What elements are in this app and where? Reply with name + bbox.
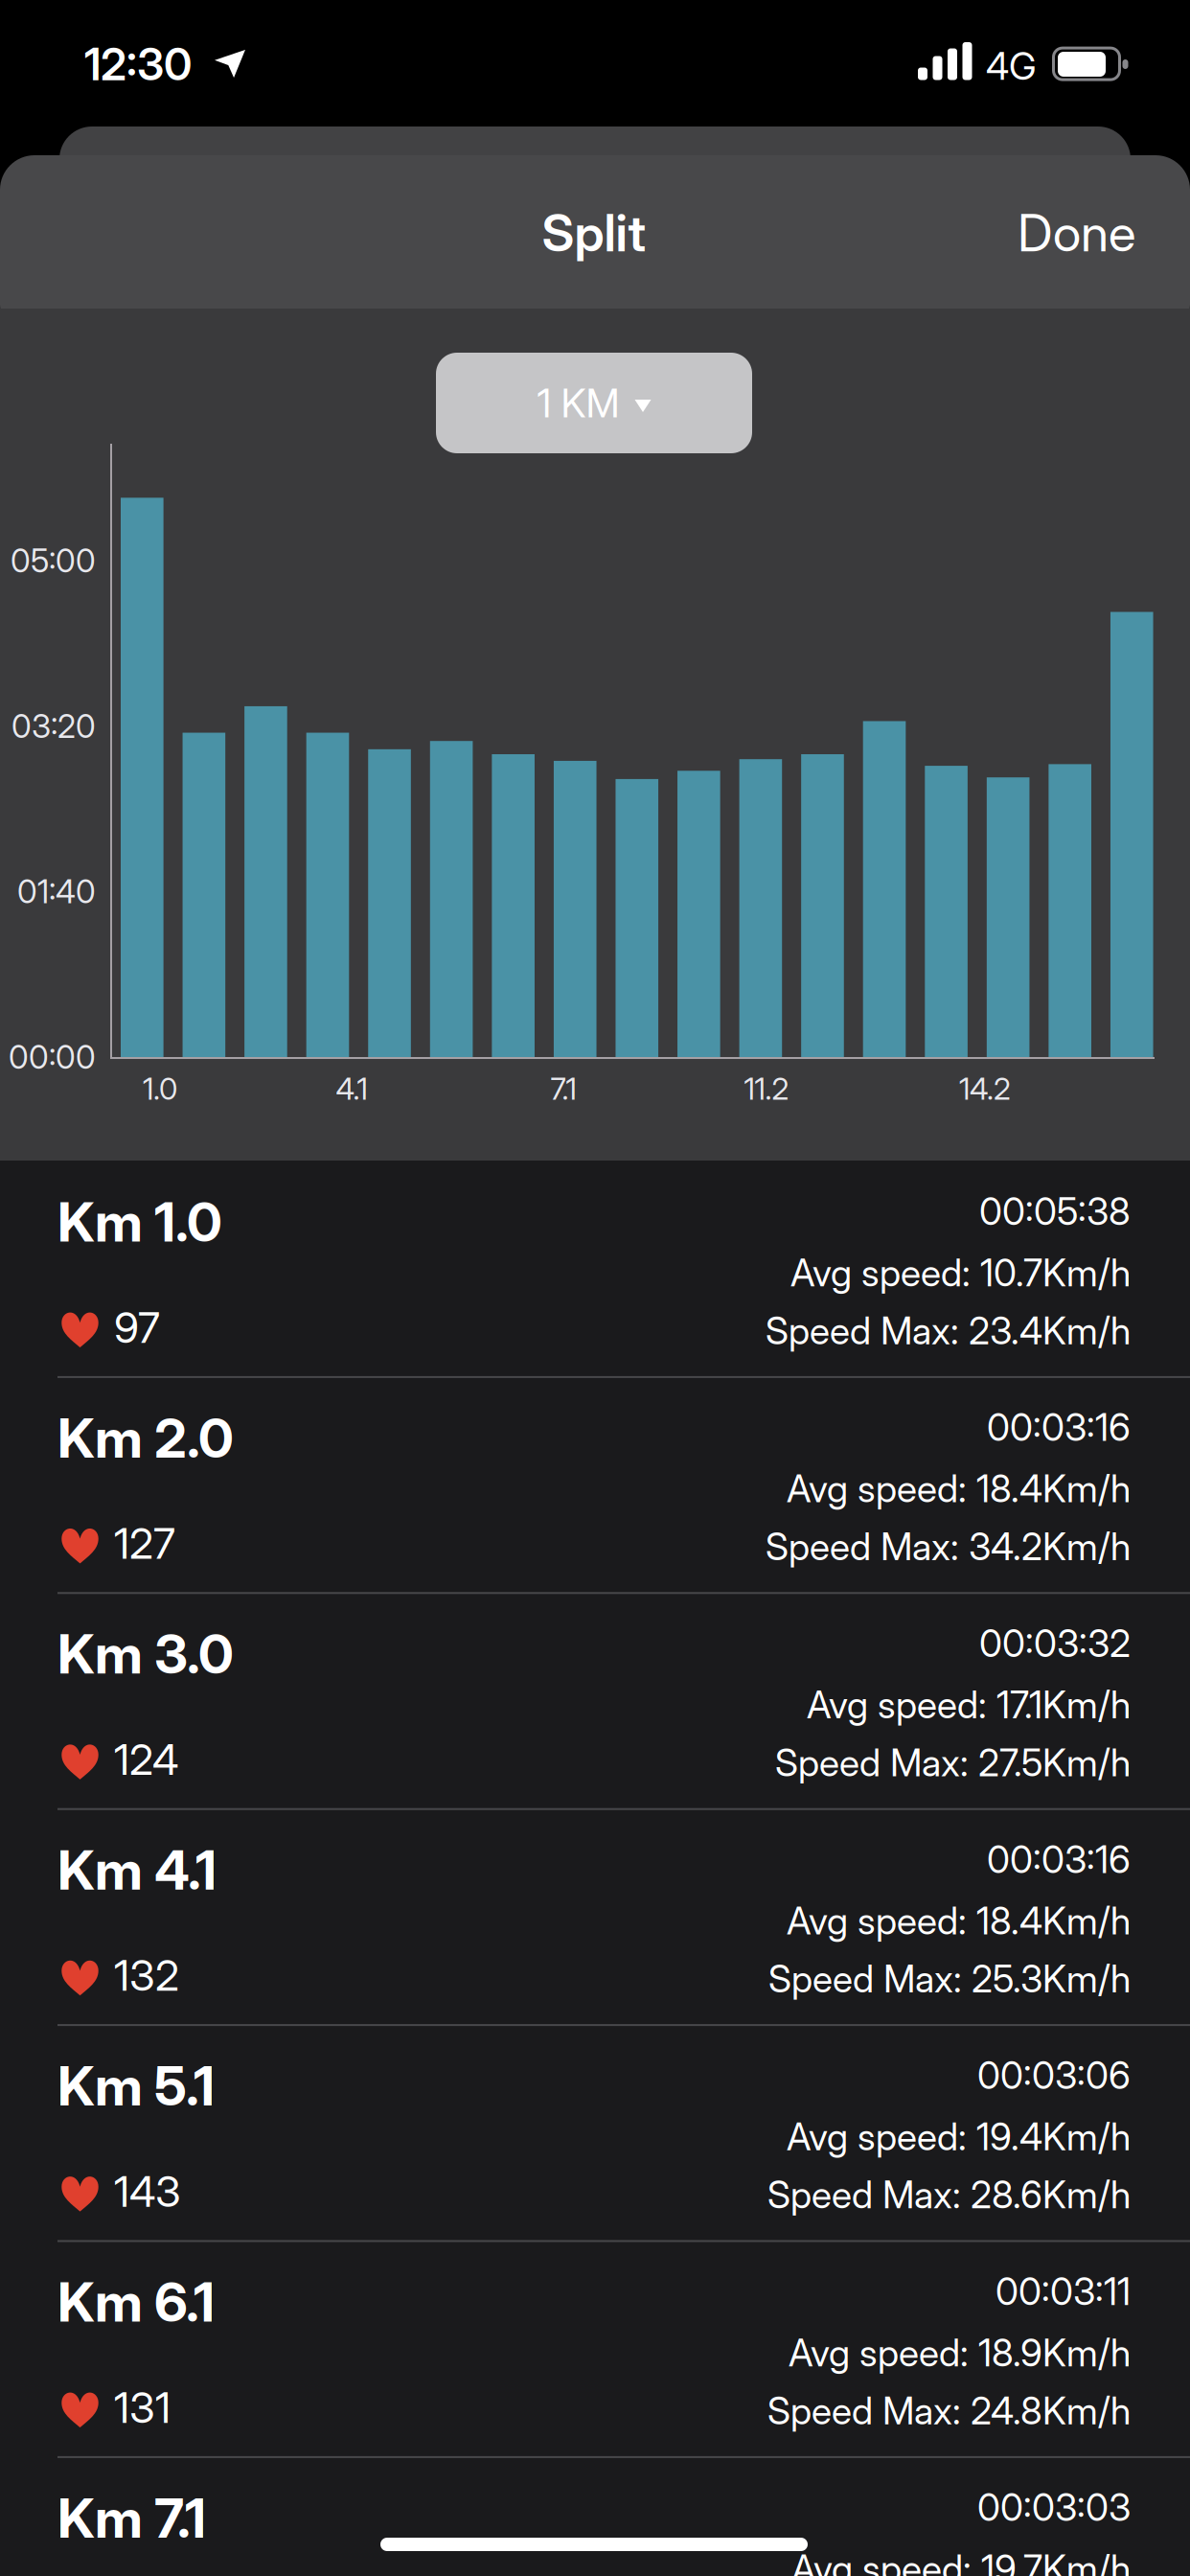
staticText: 00:03:11 [995,2269,1131,2314]
staticText: 00:00 [9,1038,96,1077]
staticText: Avg speed: 19.7Km/h [791,2546,1131,2576]
staticText: 14.2 [959,1070,1011,1107]
staticText: Avg speed: 19.4Km/h [787,2114,1131,2159]
staticText: Km 2.0 [57,1405,234,1471]
staticText: Avg speed: 10.7Km/h [790,1250,1131,1295]
staticText: Speed Max: 25.3Km/h [768,1956,1131,2001]
staticText: 7.1 [550,1070,576,1107]
staticText: Split [542,202,646,264]
staticText: 05:00 [11,541,96,580]
staticText: 00:03:16 [987,1405,1131,1450]
staticText: Km 1.0 [57,1189,222,1255]
staticText: 4.1 [336,1070,367,1107]
staticText: 4G [986,44,1036,89]
staticText: 11.2 [744,1070,789,1107]
staticText: 00:05:38 [979,1189,1131,1234]
staticText: 97 [114,1302,160,1353]
staticText: Avg speed: 18.4Km/h [787,1466,1131,1511]
staticText: Avg speed: 17.1Km/h [807,1682,1131,1727]
button[interactable]: 1 KM [436,353,752,453]
staticText: Km 7.1 [57,2485,206,2551]
staticText: 124 [114,1734,178,1785]
staticText: Avg speed: 18.9Km/h [789,2330,1131,2375]
staticText: Speed Max: 28.6Km/h [767,2172,1131,2217]
staticText: 131 [114,2382,171,2433]
staticText: Avg speed: 18.4Km/h [787,1898,1131,1943]
staticText: Km 4.1 [57,1837,217,1903]
staticText: Km 3.0 [57,1621,234,1687]
staticText: 132 [114,1950,179,2001]
staticText: Done [1018,202,1135,264]
staticText: 00:03:06 [977,2053,1131,2098]
staticText: 00:03:16 [987,1837,1131,1882]
staticText: Speed Max: 23.4Km/h [766,1308,1131,1353]
staticText: 00:03:32 [979,1621,1131,1666]
staticText: 03:20 [11,707,96,746]
staticText: 1.0 [143,1070,177,1107]
staticText: 00:03:03 [977,2485,1131,2530]
staticText: 127 [114,1518,175,1569]
staticText: Speed Max: 24.8Km/h [767,2388,1131,2433]
staticText: 01:40 [17,872,96,911]
staticText: Km 5.1 [57,2053,215,2119]
staticText: 12:30 [84,38,192,91]
staticText: Speed Max: 27.5Km/h [775,1740,1131,1785]
staticText: Speed Max: 34.2Km/h [766,1524,1131,1569]
staticText: Km 6.1 [57,2269,215,2335]
button[interactable]: Done [848,175,1135,290]
staticText: 1 KM [537,379,619,427]
staticText: 143 [114,2166,181,2217]
